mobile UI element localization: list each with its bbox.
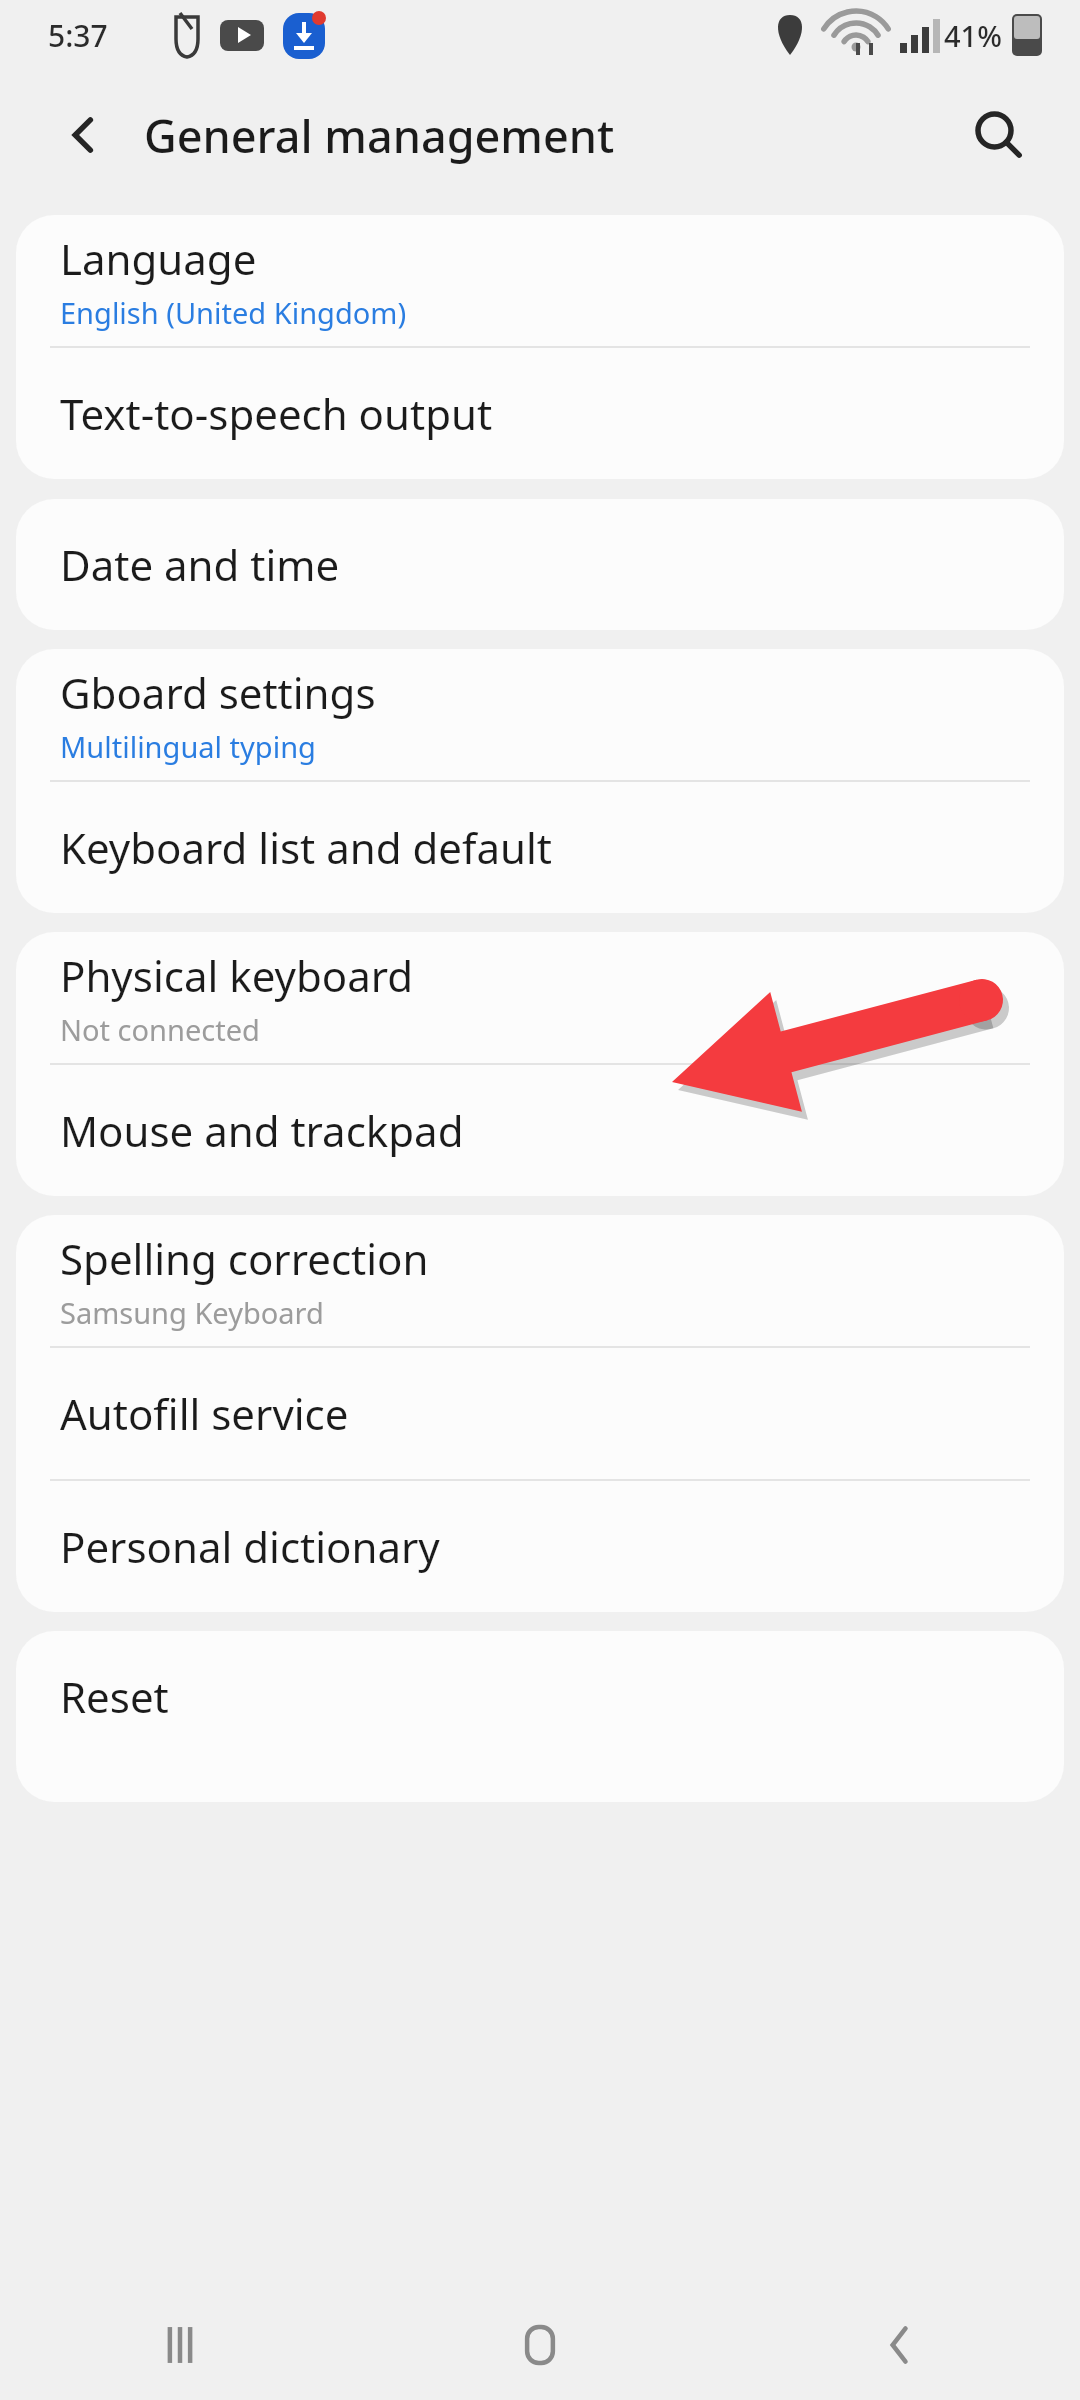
staticText: Personal dictionary bbox=[60, 1518, 440, 1575]
staticText: 5:37 bbox=[48, 15, 108, 56]
staticText: Multilingual typing bbox=[60, 727, 316, 766]
staticText: Gboard settings bbox=[60, 664, 376, 721]
staticText: Not connected bbox=[60, 1010, 260, 1049]
staticText: Autofill service bbox=[60, 1385, 349, 1442]
button[interactable]: Reset bbox=[16, 1631, 1064, 1762]
staticText: Reset bbox=[60, 1668, 169, 1725]
button[interactable]: Language bbox=[16, 215, 1064, 346]
staticText: Keyboard list and default bbox=[60, 819, 552, 876]
staticText: Language bbox=[60, 230, 257, 287]
staticText: Physical keyboard bbox=[60, 947, 414, 1004]
button[interactable]: Search bbox=[960, 97, 1036, 173]
button[interactable]: Gboard settings bbox=[16, 649, 1064, 780]
staticText: Samsung Keyboard bbox=[60, 1293, 324, 1332]
staticText: Date and time bbox=[60, 536, 340, 593]
staticText: Spelling correction bbox=[60, 1230, 429, 1287]
button[interactable]: Keyboard list and default bbox=[16, 782, 1064, 913]
staticText: 41% bbox=[944, 16, 1002, 55]
button[interactable]: Date and time bbox=[16, 499, 1064, 630]
button[interactable]: Recents bbox=[0, 2290, 360, 2400]
button[interactable]: Physical keyboard bbox=[16, 932, 1064, 1063]
staticText: General management bbox=[144, 105, 615, 166]
button[interactable]: Back bbox=[720, 2290, 1080, 2400]
button[interactable]: Back bbox=[46, 98, 120, 172]
staticText: Mouse and trackpad bbox=[60, 1102, 464, 1159]
button[interactable]: Text-to-speech output bbox=[16, 348, 1064, 479]
button[interactable]: Autofill service bbox=[16, 1348, 1064, 1479]
staticText: Text-to-speech output bbox=[60, 385, 493, 442]
staticText: English (United Kingdom) bbox=[60, 293, 407, 332]
button[interactable]: Home bbox=[360, 2290, 720, 2400]
button[interactable]: Spelling correction bbox=[16, 1215, 1064, 1346]
button[interactable]: Mouse and trackpad bbox=[16, 1065, 1064, 1196]
button[interactable]: Personal dictionary bbox=[16, 1481, 1064, 1612]
